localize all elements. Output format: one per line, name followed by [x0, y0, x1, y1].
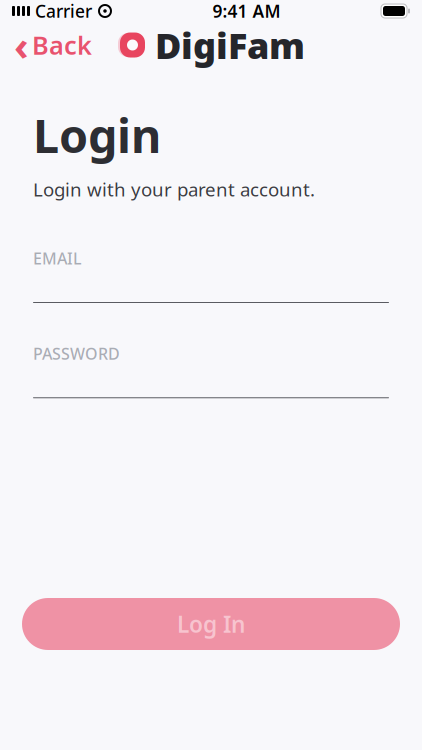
- staticText: Login: [33, 104, 161, 166]
- staticText: ‹: [14, 18, 29, 71]
- staticText: Back: [32, 28, 92, 62]
- staticText: Carrier: [30, 0, 92, 22]
- button[interactable]: ‹: [0, 12, 106, 77]
- staticText: Login with your parent account.: [33, 177, 315, 202]
- staticText: DigiFam: [155, 21, 305, 69]
- staticText: PASSWORD: [33, 343, 120, 364]
- button[interactable]: Log In: [22, 598, 400, 650]
- staticText: Log In: [177, 609, 245, 639]
- staticText: 9:41 AM: [212, 0, 280, 22]
- staticText: EMAIL: [33, 248, 82, 269]
